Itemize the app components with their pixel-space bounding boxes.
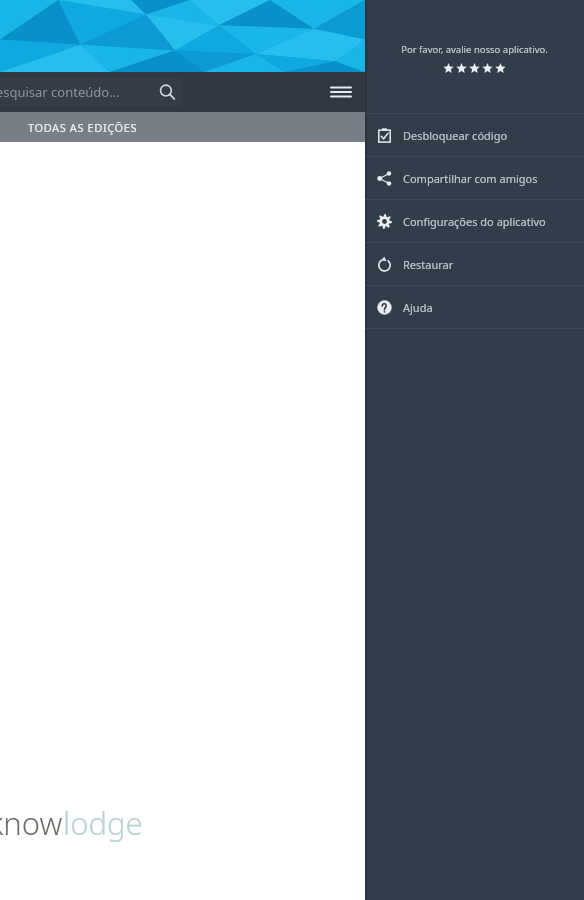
staticText: Compartilhar com amigos bbox=[403, 171, 538, 186]
button[interactable]: Desbloquear código bbox=[365, 114, 584, 156]
staticText: TODAS AS EDIÇÕES bbox=[28, 120, 138, 135]
button[interactable]: Menu bbox=[317, 72, 365, 112]
button[interactable]: Compartilhar com amigos bbox=[365, 157, 584, 199]
staticText: Por favor, avalie nosso aplicativo. bbox=[365, 43, 584, 56]
staticText: lodge bbox=[63, 802, 143, 844]
staticText: Desbloquear código bbox=[403, 128, 508, 143]
staticText: know bbox=[0, 802, 63, 844]
button[interactable]: Configurações do aplicativo bbox=[365, 200, 584, 242]
button[interactable]: Rate five stars bbox=[439, 61, 510, 76]
staticText: Pesquisar conteúdo... bbox=[0, 83, 158, 101]
staticText: Restaurar bbox=[403, 257, 454, 272]
staticText: Ajuda bbox=[403, 300, 433, 315]
button[interactable]: Ajuda bbox=[365, 286, 584, 328]
button[interactable]: Restaurar bbox=[365, 243, 584, 285]
button[interactable]: Pesquisar conteúdo... bbox=[0, 78, 182, 106]
button[interactable]: TODAS AS EDIÇÕES bbox=[0, 112, 365, 142]
staticText: Configurações do aplicativo bbox=[403, 214, 546, 229]
